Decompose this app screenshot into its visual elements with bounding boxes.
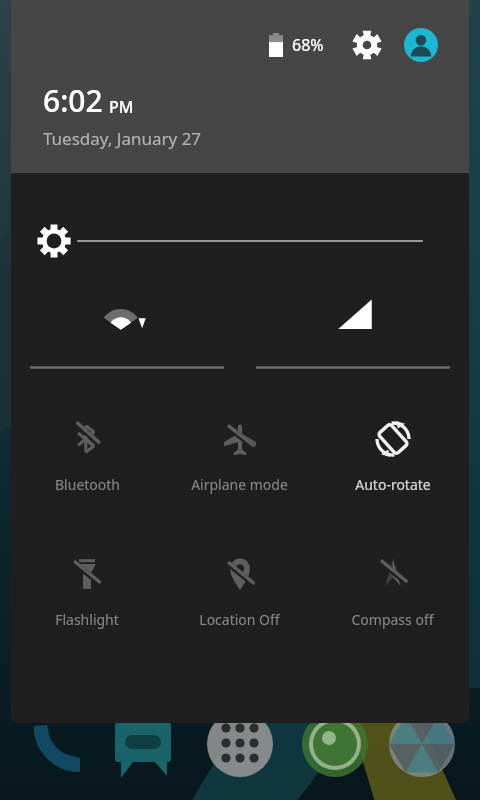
staticText: Airplane mode: [191, 475, 288, 494]
button[interactable]: Wi-Fi: [11, 285, 240, 370]
button[interactable]: User profile: [402, 26, 440, 64]
button[interactable]: Flashlight: [11, 540, 163, 675]
button[interactable]: Airplane mode: [163, 405, 316, 540]
staticText: Auto-rotate: [355, 475, 431, 494]
button[interactable]: Brightness: [36, 223, 422, 259]
staticText: Bluetooth: [55, 475, 120, 494]
button[interactable]: Settings: [348, 26, 386, 64]
staticText: Tuesday, January 27: [43, 127, 202, 150]
button[interactable]: Compass off: [316, 540, 469, 675]
button[interactable]: Location Off: [163, 540, 316, 675]
staticText: Location Off: [199, 610, 280, 629]
staticText: 6:02: [43, 80, 103, 121]
button[interactable]: Bluetooth: [11, 405, 163, 540]
staticText: PM: [109, 96, 134, 118]
button[interactable]: Auto-rotate: [316, 405, 469, 540]
staticText: Compass off: [351, 610, 434, 629]
button[interactable]: Mobile signal: [240, 285, 469, 370]
staticText: Flashlight: [55, 610, 119, 629]
staticText: 68%: [292, 34, 324, 56]
